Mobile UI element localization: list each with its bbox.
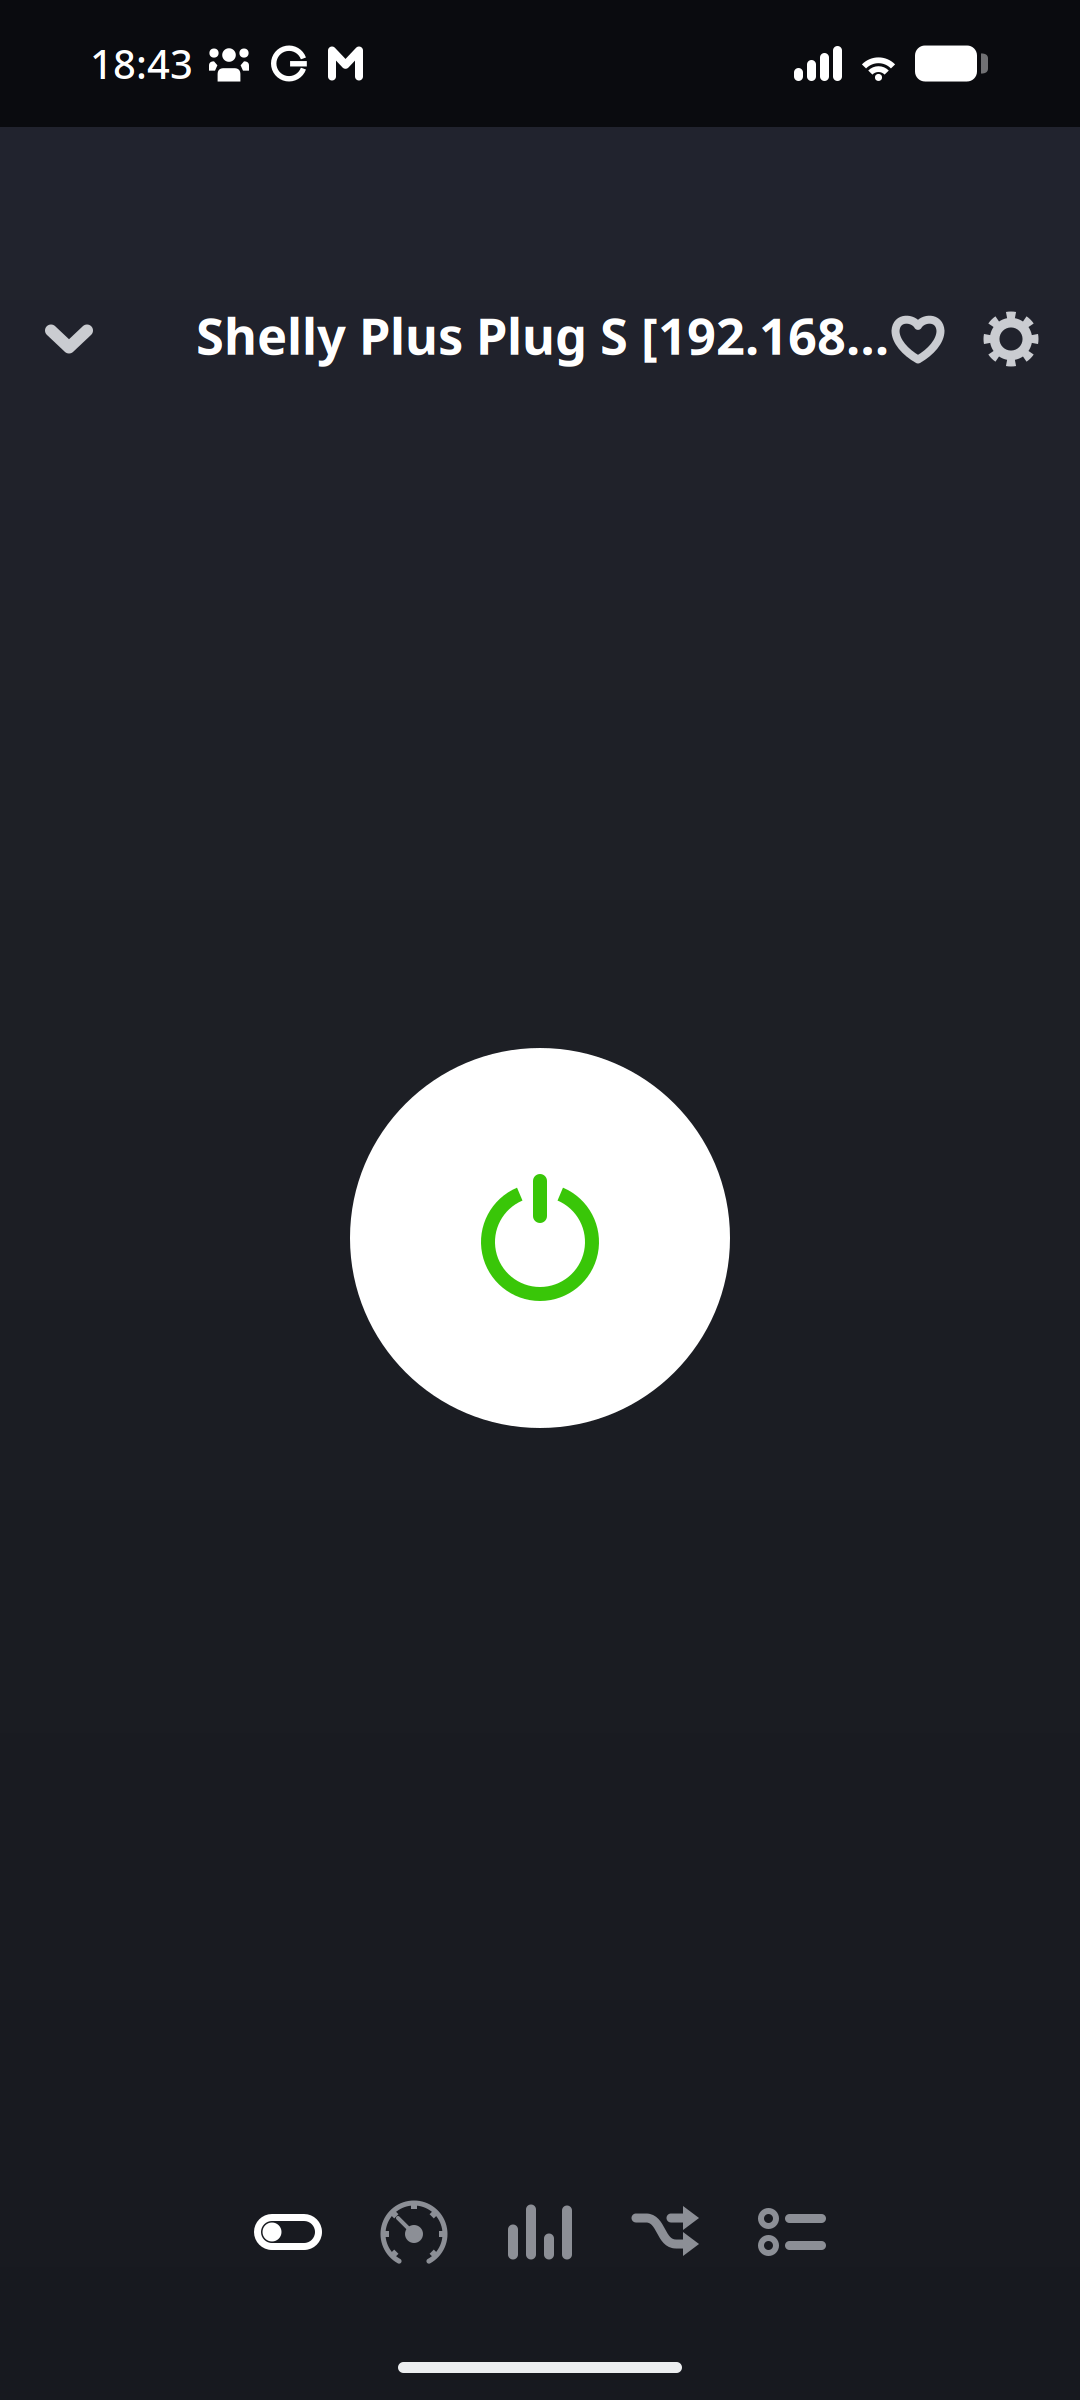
button[interactable]: Schedules bbox=[610, 2182, 720, 2282]
button[interactable]: Favourite bbox=[870, 274, 966, 404]
staticText: 18:43 bbox=[90, 37, 193, 90]
button[interactable]: Collapse bbox=[23, 274, 115, 404]
button[interactable]: Statistics bbox=[485, 2182, 595, 2282]
button[interactable]: Switch bbox=[233, 2182, 343, 2282]
button[interactable]: Power meter bbox=[359, 2182, 469, 2282]
button[interactable]: Power bbox=[350, 1048, 730, 1428]
staticText: Shelly Plus Plug S [192.168.178.… bbox=[196, 301, 896, 369]
button[interactable]: Actions bbox=[737, 2182, 847, 2282]
button[interactable]: Settings bbox=[963, 274, 1059, 404]
